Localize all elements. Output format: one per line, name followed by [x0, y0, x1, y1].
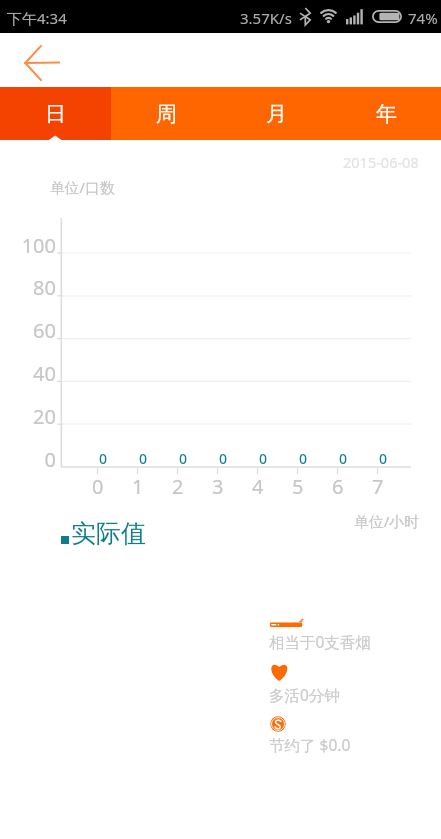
staticText: 周 — [156, 101, 177, 127]
staticText: 月 — [266, 101, 287, 127]
staticText: 0 — [259, 449, 268, 468]
staticText: 3.57K/s — [240, 8, 292, 28]
staticText: 0 — [0, 446, 56, 473]
staticText: 0 — [139, 449, 148, 468]
staticText: 日 — [45, 101, 66, 127]
staticText: 7 — [372, 473, 384, 500]
staticText: 0 — [299, 449, 308, 468]
staticText: 4 — [252, 473, 264, 500]
staticText: 年 — [376, 101, 397, 127]
staticText: 2 — [172, 473, 184, 500]
staticText: 0 — [179, 449, 188, 468]
staticText: 0 — [379, 449, 388, 468]
button[interactable]: 年 — [331, 87, 441, 140]
button[interactable]: Back — [6, 38, 64, 86]
staticText: 多活0分钟 — [269, 684, 340, 705]
staticText: 1 — [132, 473, 144, 500]
staticText: 74% — [408, 8, 438, 28]
staticText: 0 — [219, 449, 228, 468]
staticText: 下午4:34 — [7, 8, 67, 28]
staticText: 5 — [292, 473, 304, 500]
staticText: 40 — [0, 360, 56, 387]
staticText: 100 — [0, 232, 56, 259]
staticText: 0 — [99, 449, 108, 468]
staticText: 相当于0支香烟 — [269, 631, 371, 652]
button[interactable]: 月 — [221, 87, 331, 140]
staticText: 节约了 $0.0 — [269, 734, 351, 755]
staticText: 3 — [212, 473, 224, 500]
button[interactable]: 日 — [0, 87, 111, 140]
staticText: 单位/口数 — [50, 177, 115, 197]
staticText: 20 — [0, 403, 56, 430]
button[interactable]: 周 — [111, 87, 221, 140]
staticText: 6 — [332, 473, 344, 500]
staticText: 实际值 — [71, 518, 146, 549]
staticText: 80 — [0, 274, 56, 301]
staticText: 0 — [339, 449, 348, 468]
staticText: 0 — [92, 473, 104, 500]
staticText: 2015-06-08 — [343, 152, 419, 172]
staticText: 60 — [0, 317, 56, 344]
staticText: 单位/小时 — [354, 511, 420, 531]
